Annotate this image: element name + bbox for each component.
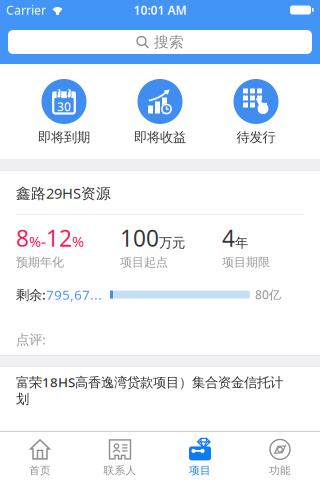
staticText: 待发行 [236, 129, 275, 145]
button[interactable]: 待发行 [208, 79, 304, 145]
button[interactable]: 功能 [240, 438, 320, 477]
staticText: Carrier [6, 2, 46, 18]
staticText: % [72, 231, 84, 251]
staticText: 富荣18HS高香逸湾贷款项目）集合资金信托计 划 [16, 373, 283, 407]
button[interactable]: 首页 [0, 438, 80, 477]
button[interactable]: 鑫路29HS资源 [0, 171, 320, 355]
button[interactable]: 即将收益 [112, 79, 208, 145]
staticText: 10:01 AM [133, 2, 186, 18]
staticText: 预期年化 [16, 255, 64, 270]
staticText: 795,67... [46, 286, 102, 303]
staticText: 鑫路29HS资源 [16, 183, 111, 203]
button[interactable]: 搜索 [0, 30, 320, 54]
staticText: 项目 [189, 464, 211, 477]
staticText: 点评: [16, 330, 46, 348]
staticText: 100 [120, 223, 159, 253]
staticText: - [41, 231, 46, 252]
button[interactable]: 30 [16, 79, 112, 145]
button[interactable]: 联系人 [80, 438, 160, 477]
staticText: 即将到期 [38, 129, 90, 145]
staticText: % [29, 231, 41, 251]
staticText: 万元 [159, 235, 185, 251]
staticText: 4 [222, 223, 235, 253]
staticText: 12 [46, 223, 72, 253]
staticText: 联系人 [103, 464, 136, 477]
staticText: 8 [16, 223, 29, 253]
button[interactable]: 富荣18HS高香逸湾贷款项目）集合资金信托计 划 [0, 367, 320, 407]
staticText: 年 [235, 235, 248, 251]
staticText: 首页 [29, 464, 51, 477]
staticText: 项目起点 [120, 255, 168, 270]
staticText: 项目期限 [222, 255, 270, 270]
staticText: 功能 [269, 464, 291, 477]
button[interactable]: 项目 [160, 438, 240, 477]
staticText: 30 [57, 98, 71, 114]
staticText: 剩余: [16, 286, 46, 303]
staticText: 搜索 [154, 33, 184, 51]
staticText: 80亿 [255, 287, 281, 302]
staticText: 即将收益 [134, 129, 186, 145]
